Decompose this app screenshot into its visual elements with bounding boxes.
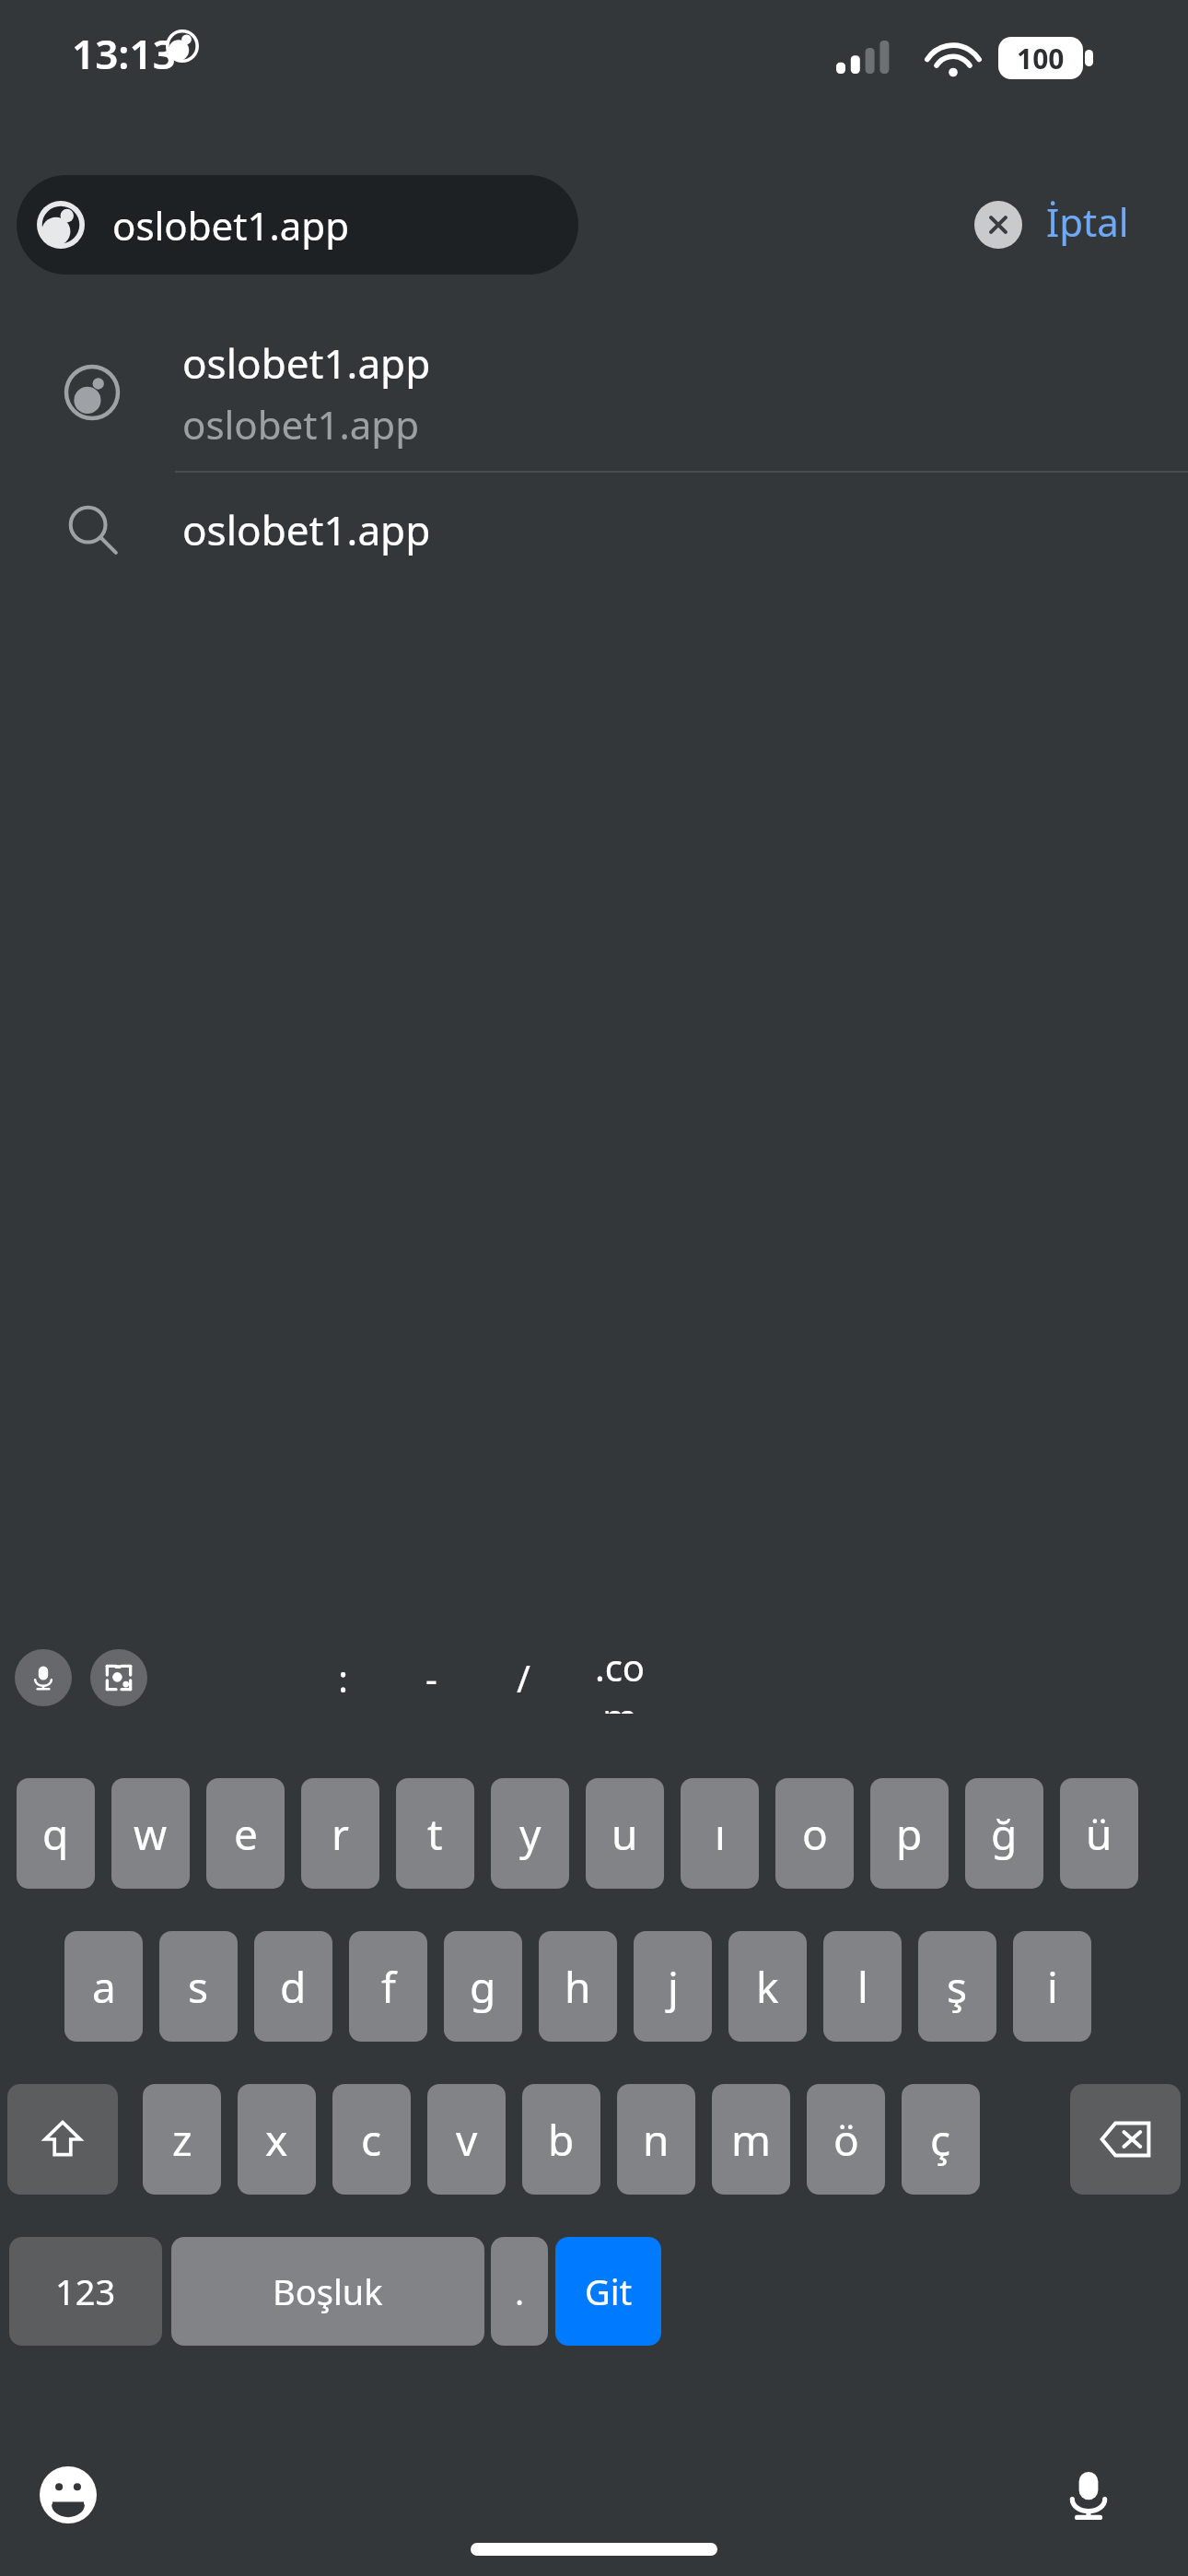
staticText: y xyxy=(519,1805,542,1863)
staticText: f xyxy=(381,1958,396,2016)
staticText: Boşluk xyxy=(273,2267,383,2315)
staticText: ı xyxy=(715,1805,726,1863)
staticText: p xyxy=(896,1805,923,1863)
staticText: 123 xyxy=(55,2267,116,2315)
button[interactable]: Temizle xyxy=(974,201,1022,249)
staticText: oslobet1.app xyxy=(182,398,419,451)
button[interactable]: oslobet1.app xyxy=(0,474,1188,585)
staticText: m xyxy=(731,2111,772,2169)
button[interactable]: c xyxy=(332,2084,411,2195)
staticText: b xyxy=(548,2111,575,2169)
staticText: l xyxy=(857,1958,868,2016)
button[interactable]: ü xyxy=(1060,1778,1138,1889)
staticText: z xyxy=(172,2111,192,2169)
staticText: : xyxy=(338,1653,348,1703)
staticText: / xyxy=(517,1653,530,1703)
button[interactable]: ç xyxy=(902,2084,980,2195)
button[interactable]: x xyxy=(238,2084,316,2195)
button[interactable]: k xyxy=(728,1931,807,2042)
staticText: .com xyxy=(578,1642,661,1714)
staticText: u xyxy=(611,1805,638,1863)
button[interactable]: ş xyxy=(918,1931,996,2042)
button[interactable]: n xyxy=(617,2084,695,2195)
button[interactable]: w xyxy=(111,1778,190,1889)
button[interactable]: v xyxy=(427,2084,506,2195)
button[interactable]: q xyxy=(17,1778,95,1889)
staticText: v xyxy=(456,2111,478,2169)
button[interactable]: g xyxy=(444,1931,522,2042)
button[interactable]: s xyxy=(159,1931,238,2042)
staticText: k xyxy=(756,1958,779,2016)
staticText: 100 xyxy=(1017,40,1065,77)
button[interactable]: f xyxy=(349,1931,427,2042)
staticText: oslobet1.app xyxy=(182,335,431,391)
button[interactable]: t xyxy=(396,1778,474,1889)
staticText: r xyxy=(332,1805,349,1863)
staticText: ç xyxy=(930,2111,951,2169)
button[interactable]: ı xyxy=(681,1778,759,1889)
button[interactable]: ğ xyxy=(965,1778,1043,1889)
staticText: q xyxy=(42,1805,69,1863)
button[interactable]: Kamera ile ara xyxy=(90,1649,147,1706)
button[interactable]: .com xyxy=(578,1642,661,1714)
staticText: ğ xyxy=(991,1805,1018,1863)
staticText: j xyxy=(668,1958,679,2016)
staticText: a xyxy=(92,1958,116,2016)
button[interactable]: j xyxy=(634,1931,712,2042)
button[interactable]: . xyxy=(491,2237,548,2346)
button[interactable]: Boşluk xyxy=(171,2237,484,2346)
button[interactable]: b xyxy=(522,2084,600,2195)
button[interactable]: a xyxy=(64,1931,143,2042)
button[interactable]: : xyxy=(324,1642,361,1714)
staticText: d xyxy=(280,1958,307,2016)
staticText: oslobet1.app xyxy=(112,199,349,252)
staticText: x xyxy=(265,2111,288,2169)
button[interactable]: Git xyxy=(555,2237,661,2346)
button[interactable]: d xyxy=(254,1931,332,2042)
button[interactable]: 123 xyxy=(9,2237,162,2346)
staticText: İptal xyxy=(1046,195,1129,248)
button[interactable]: r xyxy=(301,1778,379,1889)
button[interactable]: / xyxy=(505,1642,542,1714)
staticText: g xyxy=(470,1958,496,2016)
button[interactable]: u xyxy=(586,1778,664,1889)
button[interactable]: p xyxy=(870,1778,949,1889)
staticText: Git xyxy=(585,2267,633,2315)
button[interactable]: Dikte xyxy=(1055,2462,1122,2528)
button[interactable]: İptal xyxy=(1041,190,1135,253)
button[interactable]: oslobet1.app xyxy=(17,175,578,275)
staticText: h xyxy=(565,1958,591,2016)
staticText: . xyxy=(515,2267,525,2315)
button[interactable]: h xyxy=(539,1931,617,2042)
button[interactable]: y xyxy=(491,1778,569,1889)
button[interactable]: o xyxy=(775,1778,854,1889)
staticText: ö xyxy=(833,2111,859,2169)
staticText: ü xyxy=(1086,1805,1112,1863)
button[interactable]: oslobet1.app xyxy=(0,313,1188,472)
button[interactable]: z xyxy=(143,2084,221,2195)
button[interactable]: ö xyxy=(807,2084,885,2195)
staticText: t xyxy=(427,1805,443,1863)
button[interactable]: l xyxy=(823,1931,902,2042)
button[interactable]: Sil xyxy=(1070,2084,1181,2195)
button[interactable]: Sesli arama xyxy=(15,1649,72,1706)
staticText: i xyxy=(1047,1958,1058,2016)
staticText: c xyxy=(361,2111,382,2169)
staticText: o xyxy=(802,1805,828,1863)
staticText: oslobet1.app xyxy=(182,502,431,557)
staticText: w xyxy=(134,1805,168,1863)
button[interactable]: e xyxy=(206,1778,285,1889)
staticText: s xyxy=(188,1958,209,2016)
staticText: ş xyxy=(947,1958,968,2016)
staticText: e xyxy=(234,1805,258,1863)
staticText: 13:13 xyxy=(72,26,176,81)
button[interactable]: Emoji xyxy=(35,2462,101,2528)
staticText: n xyxy=(643,2111,670,2169)
staticText: - xyxy=(425,1653,437,1703)
button[interactable]: m xyxy=(712,2084,790,2195)
button[interactable]: - xyxy=(413,1642,449,1714)
button[interactable]: Shift xyxy=(7,2084,118,2195)
button[interactable]: i xyxy=(1013,1931,1091,2042)
